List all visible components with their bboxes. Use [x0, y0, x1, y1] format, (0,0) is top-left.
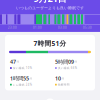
- staticText: 5時間09: [55, 58, 74, 65]
- staticText: 深い睡眠 10%: [13, 66, 32, 70]
- staticText: 9月21日: [33, 0, 66, 4]
- staticText: 浅い睡眠 66%: [58, 66, 77, 70]
- staticText: 1時間55: [10, 75, 29, 82]
- staticText: 01:00: [33, 26, 42, 29]
- staticText: 23:00: [8, 26, 17, 29]
- staticText: 03:00: [58, 26, 67, 29]
- staticText: いつものユーザーよりも良い睡眠です: [16, 5, 84, 10]
- staticText: 7時間51分: [33, 39, 66, 48]
- button[interactable]: 7時間51分: [5, 35, 95, 90]
- staticText: 分: [17, 60, 20, 63]
- staticText: 10: [55, 75, 61, 82]
- button[interactable]: 睡眠記録: [45, 98, 54, 100]
- staticText: 05:30: [83, 26, 92, 29]
- staticText: 覚醒時間: [58, 83, 70, 86]
- staticText: 分: [30, 77, 33, 80]
- staticText: レム睡眠 24%: [13, 83, 32, 86]
- staticText: 47: [10, 58, 16, 65]
- staticText: 分: [75, 60, 78, 63]
- staticText: 分: [62, 77, 65, 80]
